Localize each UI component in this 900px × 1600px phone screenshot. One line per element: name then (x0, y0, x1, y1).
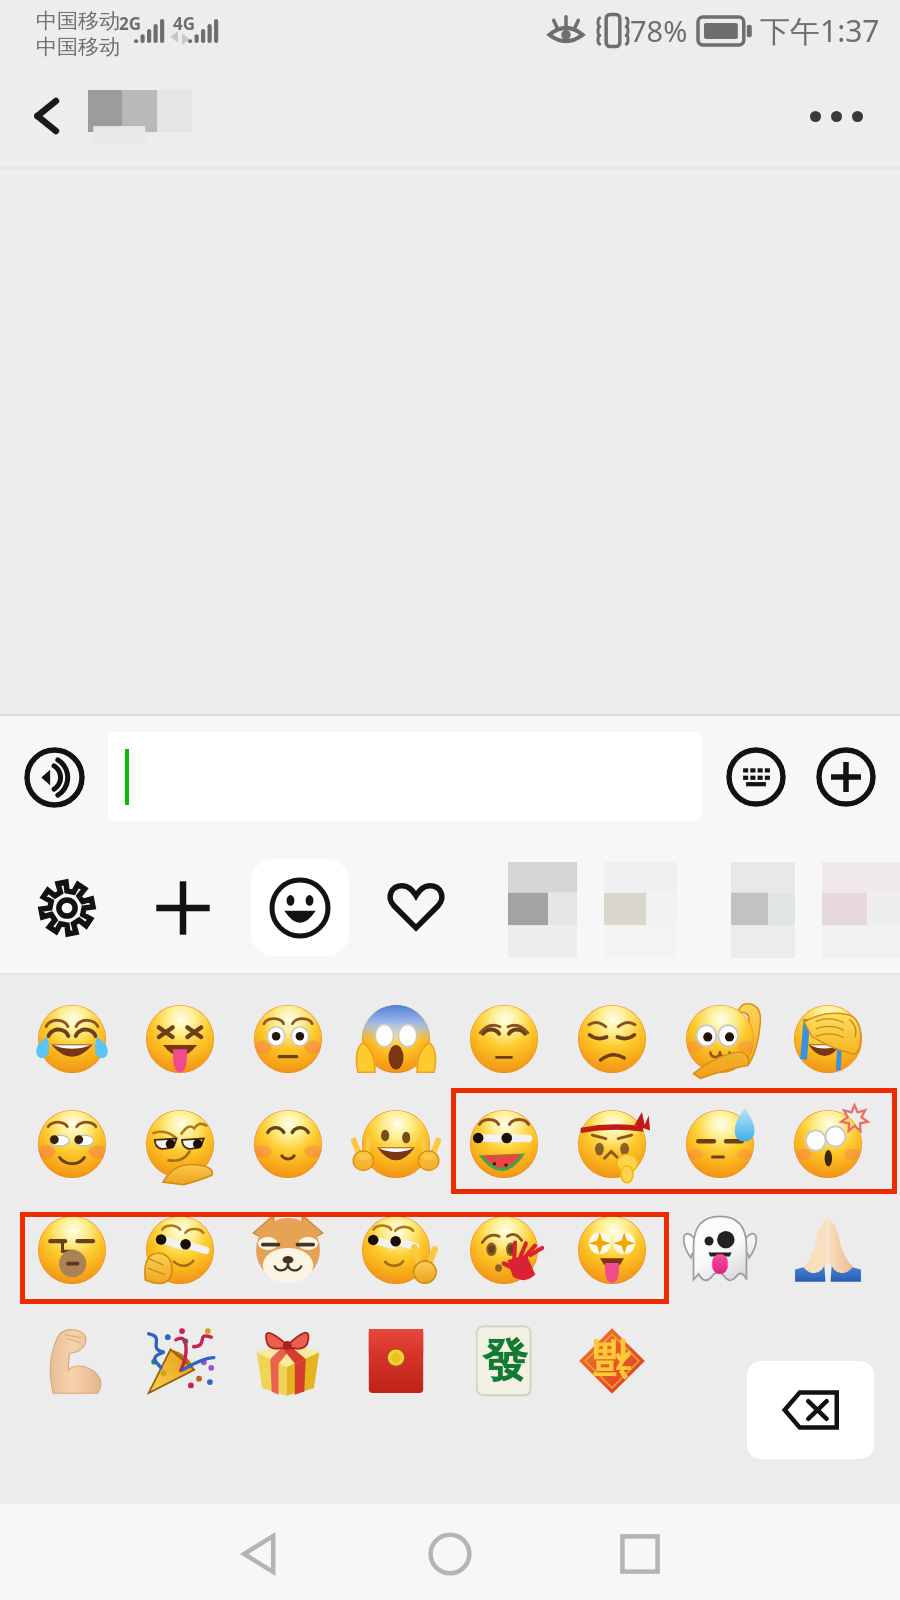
button[interactable]: More options (792, 92, 880, 140)
button[interactable]: Star-struck face (560, 1200, 664, 1300)
button[interactable]: Folded hands (776, 1200, 880, 1300)
button[interactable]: Face with sweat (668, 1094, 772, 1194)
button[interactable]: Fu decoration (560, 1311, 664, 1411)
button[interactable]: Flexed biceps (20, 1311, 124, 1411)
button[interactable]: Face with hand over mouth (452, 1200, 556, 1300)
staticText: 中国移动 (36, 8, 120, 34)
button[interactable]: Face with raised hand (668, 989, 772, 1089)
button[interactable]: Add sticker (148, 873, 218, 943)
button[interactable]: Smiling face with blush (20, 1094, 124, 1194)
button[interactable]: Unamused face (560, 989, 664, 1089)
button[interactable]: Voice input (24, 747, 85, 808)
staticText: 下午1:37 (760, 10, 880, 51)
button[interactable]: Mahjong tile (452, 1311, 556, 1411)
staticText: 2G (119, 12, 142, 35)
button[interactable]: Face screaming in fear (344, 989, 448, 1089)
button[interactable]: Sticker pack 2 (604, 862, 677, 958)
staticText: 4G (173, 12, 196, 35)
staticText: 發 (482, 1332, 528, 1390)
button[interactable]: Ghost (668, 1200, 772, 1300)
button[interactable]: Favorites (381, 873, 451, 943)
button[interactable]: Settings (32, 873, 102, 943)
button[interactable]: Angry face with headband (560, 1094, 664, 1194)
button[interactable]: Emoji (251, 859, 349, 956)
button[interactable]: Sticker pack 4 (822, 862, 900, 958)
button[interactable]: Delete (747, 1361, 874, 1459)
button[interactable]: Recents (570, 1516, 710, 1592)
button[interactable]: Smug face (128, 1094, 232, 1194)
staticText: 78% (630, 11, 688, 50)
button[interactable]: Flushed face (236, 989, 340, 1089)
button[interactable]: Sticker pack 3 (731, 862, 795, 958)
button[interactable]: Pensive face (452, 989, 556, 1089)
button[interactable]: Relieved face (236, 1094, 340, 1194)
button[interactable]: Squinting face with tongue (128, 989, 232, 1089)
button[interactable]: Sticker pack 1 (508, 862, 577, 958)
button[interactable]: Astonished face (776, 1094, 880, 1194)
button[interactable]: Face with tears of joy (20, 989, 124, 1089)
button[interactable]: Back (20, 88, 76, 144)
button[interactable]: Face with hand over face (776, 989, 880, 1089)
button[interactable]: Back (190, 1516, 330, 1592)
button[interactable]: Message input (108, 732, 702, 821)
button[interactable]: Home (380, 1516, 520, 1592)
button[interactable]: Dog face (236, 1200, 340, 1300)
button[interactable]: Face eating watermelon (452, 1094, 556, 1194)
button[interactable]: Party popper (128, 1311, 232, 1411)
button[interactable]: Wrapped gift (236, 1311, 340, 1411)
staticText: 中国移动 (36, 34, 120, 60)
button[interactable]: Face blowing (20, 1200, 124, 1300)
button[interactable]: Smug face with hand (128, 1200, 232, 1300)
button[interactable]: Grinning face with hands (344, 1094, 448, 1194)
button[interactable]: Face with peace sign (344, 1200, 448, 1300)
staticText: 福 (591, 1337, 631, 1385)
button[interactable]: Keyboard (726, 747, 786, 807)
button[interactable]: Add (816, 747, 876, 807)
button[interactable]: Red envelope (344, 1311, 448, 1411)
